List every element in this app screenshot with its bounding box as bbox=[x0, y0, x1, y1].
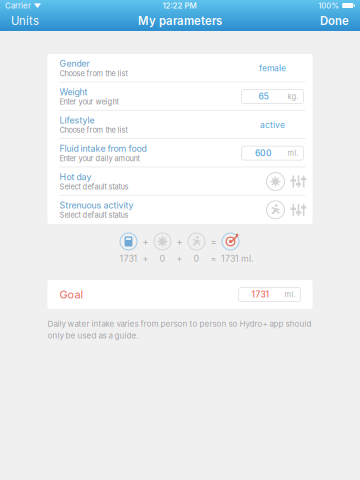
staticText: My parameters bbox=[138, 14, 222, 28]
staticText: Goal bbox=[59, 288, 83, 301]
staticText: + bbox=[142, 236, 148, 247]
button[interactable]: Units bbox=[2, 11, 48, 31]
button[interactable]: Fluid intake from food bbox=[47, 139, 312, 167]
button[interactable]: Status bbox=[264, 199, 286, 221]
staticText: kg. bbox=[287, 92, 298, 101]
staticText: = bbox=[210, 236, 216, 247]
button[interactable]: Adjust bbox=[289, 170, 307, 192]
button[interactable]: Goal bbox=[47, 280, 312, 309]
staticText: Units bbox=[11, 14, 39, 28]
staticText: 100% bbox=[318, 1, 339, 10]
staticText: ml. bbox=[287, 149, 298, 158]
button[interactable]: Weight bbox=[47, 82, 312, 111]
staticText: Choose from the list bbox=[59, 126, 127, 135]
staticText: Weight bbox=[59, 87, 87, 97]
staticText: = bbox=[210, 253, 216, 264]
staticText: + bbox=[176, 253, 182, 264]
staticText: Carrier bbox=[5, 1, 31, 10]
staticText: 1731 bbox=[251, 289, 269, 300]
staticText: active bbox=[260, 120, 285, 130]
staticText: 65 bbox=[258, 91, 268, 102]
button[interactable]: Gender bbox=[47, 54, 312, 82]
staticText: 1731 ml. bbox=[221, 253, 254, 264]
staticText: 600 bbox=[255, 148, 272, 158]
staticText: Choose from the list bbox=[59, 69, 127, 78]
staticText: Select default status bbox=[59, 211, 128, 220]
staticText: Hot day bbox=[59, 172, 91, 182]
staticText: Select default status bbox=[59, 182, 128, 191]
staticText: ml. bbox=[284, 290, 295, 299]
staticText: Done bbox=[320, 14, 349, 28]
staticText: + bbox=[176, 236, 182, 247]
staticText: Strenuous activity bbox=[59, 200, 133, 211]
staticText: Daily water intake varies from person to… bbox=[47, 319, 311, 329]
staticText: female bbox=[259, 63, 286, 73]
button[interactable]: Adjust bbox=[289, 199, 307, 221]
button[interactable]: Lifestyle bbox=[47, 111, 312, 139]
staticText: Lifestyle bbox=[59, 115, 94, 126]
staticText: 0 bbox=[159, 253, 165, 264]
staticText: Enter your daily amount bbox=[59, 154, 139, 163]
staticText: + bbox=[142, 253, 148, 264]
staticText: 1731 bbox=[119, 253, 137, 264]
staticText: Enter your weight bbox=[59, 97, 118, 106]
button[interactable]: Hot day bbox=[47, 167, 312, 196]
button[interactable]: Strenuous activity bbox=[47, 196, 312, 224]
button[interactable]: Status bbox=[264, 170, 286, 192]
staticText: Gender bbox=[59, 58, 89, 69]
staticText: only be used as a guide. bbox=[47, 331, 138, 340]
staticText: 12:22 PM bbox=[163, 1, 197, 10]
button[interactable]: Done bbox=[311, 11, 358, 31]
staticText: 0 bbox=[193, 253, 199, 264]
staticText: Fluid intake from food bbox=[59, 143, 146, 154]
